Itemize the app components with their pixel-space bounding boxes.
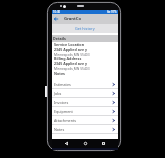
staticText: Notes: [54, 71, 65, 76]
staticText: Invoices: [54, 100, 112, 105]
button[interactable]: Back: [52, 14, 118, 24]
staticText: Equipment: [54, 109, 112, 114]
button[interactable]: Notes: [52, 125, 118, 134]
staticText: Notes: [54, 127, 112, 132]
button[interactable]: Get history: [52, 24, 118, 33]
staticText: Estimates: [54, 82, 112, 87]
staticText: Get history: [75, 26, 95, 31]
staticText: Minneapolis,MN 55403: [54, 52, 90, 56]
button[interactable]: Jobs: [52, 89, 118, 98]
button[interactable]: Back: [52, 14, 60, 24]
button[interactable]: Estimates: [52, 80, 118, 89]
staticText: Details: [53, 36, 66, 41]
staticText: GrantCo: [64, 16, 82, 22]
button[interactable]: Back: [63, 140, 70, 147]
button[interactable]: Attachments: [52, 116, 118, 125]
staticText: 2345 Applied ave y: [54, 61, 88, 66]
staticText: Attachments: [54, 118, 112, 123]
staticText: Billing Address: [54, 56, 82, 61]
button[interactable]: Invoices: [52, 98, 118, 107]
button[interactable]: Home: [82, 140, 89, 147]
staticText: Jobs: [54, 91, 112, 96]
button[interactable]: Recents: [100, 140, 107, 147]
staticText: Service Location: [54, 42, 85, 47]
staticText: Minneapolis,MN 55403: [54, 66, 90, 70]
staticText: 2345 Applied ave y: [54, 47, 88, 52]
staticText: 10:30: [53, 10, 62, 14]
staticText: lte 97%: [107, 10, 117, 14]
button[interactable]: Equipment: [52, 107, 118, 116]
